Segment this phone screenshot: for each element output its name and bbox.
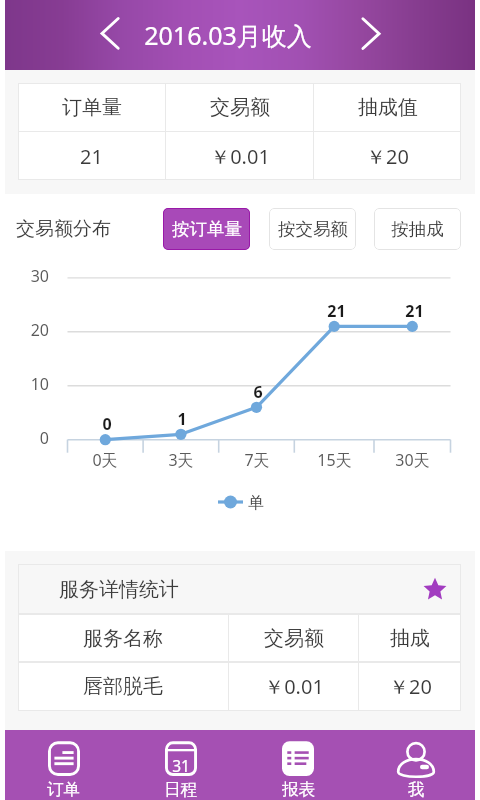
staticText: 7天 (244, 449, 270, 471)
staticText: 31 (172, 755, 190, 776)
staticText: 6 (253, 381, 263, 403)
button[interactable]: Previous month (86, 11, 134, 59)
staticText: 交易额 (210, 95, 270, 120)
staticText: 我 (408, 779, 425, 800)
staticText: 订单量 (62, 95, 122, 120)
staticText: 0 (102, 413, 112, 435)
staticText: ￥20 (366, 143, 409, 170)
staticText: 2016.03月收入 (144, 18, 312, 52)
staticText: 日程 (164, 779, 197, 800)
staticText: 订单 (47, 779, 80, 800)
staticText: 30 (30, 265, 49, 287)
button[interactable]: 按交易额 (269, 208, 356, 250)
button[interactable]: 按抽成 (374, 208, 461, 250)
staticText: 交易额 (264, 626, 324, 651)
button[interactable]: 按订单量 (163, 208, 250, 250)
staticText: 30天 (395, 449, 430, 471)
staticText: 交易额分布 (16, 217, 111, 241)
staticText: 1 (177, 408, 187, 430)
staticText: 21 (405, 300, 424, 322)
staticText: 20 (30, 319, 49, 341)
staticText: 服务详情统计 (59, 577, 179, 602)
staticText: 单 (248, 493, 264, 513)
staticText: 0天 (92, 449, 118, 471)
staticText: ￥20 (389, 673, 432, 700)
button[interactable]: 31 (122, 730, 239, 800)
staticText: 报表 (282, 779, 315, 800)
staticText: 3天 (168, 449, 194, 471)
staticText: 抽成 (390, 626, 430, 651)
staticText: ￥0.01 (210, 143, 270, 170)
staticText: 服务名称 (83, 626, 163, 651)
staticText: 抽成值 (358, 95, 418, 120)
button[interactable]: Next month (342, 11, 390, 59)
staticText: 按交易额 (278, 218, 348, 240)
staticText: 0 (39, 427, 49, 449)
staticText: 15天 (317, 449, 352, 471)
button[interactable]: 报表 (239, 730, 357, 800)
staticText: 按抽成 (391, 218, 444, 240)
staticText: 21 (80, 143, 103, 170)
staticText: 按订单量 (172, 218, 242, 240)
button[interactable]: 我 (357, 730, 475, 800)
staticText: 唇部脱毛 (83, 674, 163, 699)
staticText: 21 (327, 300, 346, 322)
button[interactable]: 订单 (5, 730, 122, 800)
staticText: ￥0.01 (264, 673, 324, 700)
staticText: 10 (30, 373, 49, 395)
